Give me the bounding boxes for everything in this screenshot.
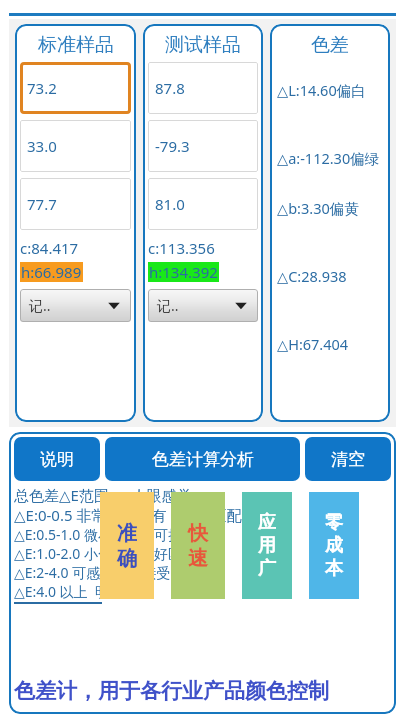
staticText: 测试样品 (165, 33, 241, 57)
button[interactable]: 清空 (305, 437, 391, 481)
staticText: 标准样品 (38, 33, 114, 57)
staticText: 零 (325, 511, 343, 534)
staticText: 说明 (40, 449, 74, 470)
staticText: h:66.989 (21, 262, 82, 282)
staticText: △b:3.30偏黄 (277, 198, 359, 218)
button[interactable]: -79.3 (148, 120, 258, 172)
button[interactable]: 33.0 (20, 120, 131, 172)
staticText: 用 (258, 534, 276, 557)
staticText: 准 (117, 521, 137, 546)
staticText: c:84.417 (20, 238, 79, 258)
staticText: △C:28.938 (277, 266, 347, 286)
staticText: 速 (188, 546, 208, 571)
staticText: 快 (188, 521, 208, 546)
staticText: 成 (325, 534, 343, 557)
staticText: △E:4.0 以上 明显色差 (14, 582, 151, 601)
button[interactable]: 81.0 (148, 178, 258, 230)
staticText: c:113.356 (148, 238, 215, 258)
staticText: △E:2-4.0 可感知，可接受匹配 (14, 563, 199, 582)
staticText: △E:1.0-2.0 小色差，较好匹配 (14, 544, 196, 563)
staticText: 应 (258, 511, 276, 534)
staticText: △E:0.5-1.0 微小色差，可接受 (14, 525, 196, 544)
staticText: 77.7 (27, 194, 57, 214)
button[interactable]: 说明 (14, 437, 100, 481)
button[interactable]: 色差计算分析 (105, 437, 300, 481)
staticText: 记.. (29, 296, 51, 315)
staticText: 清空 (331, 449, 365, 470)
staticText: △H:67.404 (277, 334, 349, 354)
staticText: 73.2 (27, 78, 57, 98)
staticText: 81.0 (155, 194, 185, 214)
staticText: 广 (258, 557, 276, 580)
button[interactable]: 记录选择 (20, 289, 131, 322)
staticText: 记.. (157, 296, 179, 315)
staticText: △L:14.60偏白 (277, 80, 366, 100)
staticText: 色差 (311, 33, 349, 57)
staticText: 确 (117, 546, 137, 571)
staticText: -79.3 (155, 136, 190, 156)
staticText: 87.8 (155, 78, 185, 98)
staticText: 色差计，用于各行业产品颜色控制 (14, 678, 329, 704)
staticText: h:134.392 (149, 262, 218, 282)
staticText: 本 (325, 557, 343, 580)
button[interactable]: 87.8 (148, 62, 258, 114)
button[interactable]: 77.7 (20, 178, 131, 230)
staticText: △E:0-0.5 非常小或没有，理想匹配 (14, 505, 242, 525)
button[interactable]: 73.2 (20, 62, 131, 114)
staticText: 色差计算分析 (152, 449, 254, 470)
button[interactable]: 记录选择 (148, 289, 258, 322)
staticText: 总色差△E范围： 人眼感觉 (14, 485, 192, 505)
staticText: 33.0 (27, 136, 57, 156)
staticText: △a:-112.30偏绿 (277, 148, 380, 168)
